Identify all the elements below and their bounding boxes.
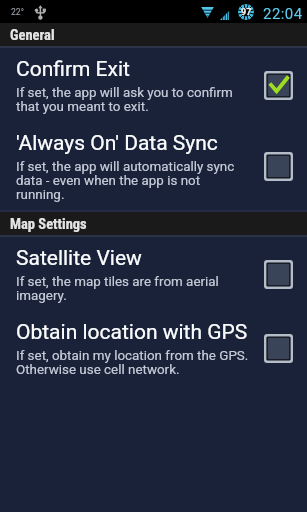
staticText: 97 [241, 7, 252, 18]
button[interactable]: Checked [264, 71, 293, 100]
staticText: If set, the app will automatically sync … [16, 160, 235, 202]
staticText: If set, the map tiles are from aerial im… [16, 275, 219, 303]
button[interactable]: Satellite View [0, 237, 307, 311]
other: Battery 97 percent [238, 4, 254, 20]
other: Cellular signal [220, 11, 229, 20]
staticText: Confirm Exit [16, 57, 130, 82]
staticText: 'Always On' Data Sync [16, 131, 218, 156]
other: Wi-Fi [201, 5, 214, 18]
staticText: If set, obtain my location from the GPS.… [16, 349, 249, 377]
button[interactable]: Confirm Exit [0, 48, 307, 122]
button[interactable]: 'Always On' Data Sync [0, 122, 307, 210]
staticText: Map Settings [10, 216, 87, 233]
staticText: Satellite View [16, 246, 142, 271]
staticText: 22:04 [263, 5, 303, 23]
button[interactable]: Unchecked [264, 334, 293, 363]
staticText: If set, the app will ask you to confirm … [16, 86, 233, 114]
button[interactable]: Unchecked [264, 152, 293, 181]
staticText: 22° [11, 7, 24, 17]
button[interactable]: Obtain location with GPS [0, 311, 307, 386]
staticText: General [10, 27, 55, 44]
button[interactable]: Unchecked [264, 260, 293, 289]
other: USB connected [35, 5, 46, 20]
staticText: Obtain location with GPS [16, 320, 248, 345]
